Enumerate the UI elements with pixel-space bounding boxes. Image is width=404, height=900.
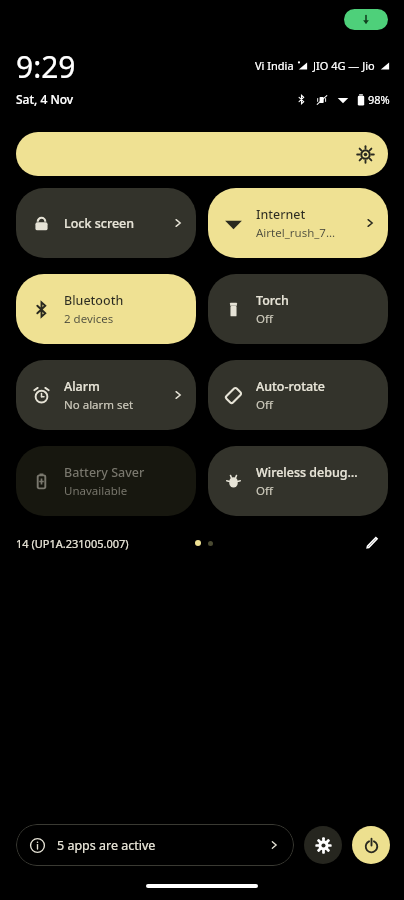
staticText: Off [256, 311, 273, 327]
staticText: Off [256, 397, 273, 413]
staticText: JIO 4G — Jio [313, 58, 375, 73]
button[interactable]: Alarm [16, 360, 196, 430]
button[interactable]: Edit tiles [356, 527, 388, 559]
button[interactable]: Auto-rotate [208, 360, 388, 430]
button[interactable]: Download in progress [344, 9, 388, 30]
staticText: Wireless debug… [256, 464, 358, 481]
staticText: 14 (UP1A.231005.007) [16, 536, 129, 551]
button[interactable]: Internet [208, 188, 388, 258]
staticText: 9:29 [16, 46, 76, 87]
staticText: Off [256, 483, 273, 499]
staticText: Vi India [255, 58, 294, 73]
staticText: Sat, 4 Nov [16, 91, 74, 107]
button[interactable]: Power [352, 826, 390, 864]
staticText: Auto-rotate [256, 378, 326, 395]
staticText: Alarm [64, 378, 100, 395]
button[interactable]: Settings [304, 826, 342, 864]
button[interactable]: Wireless debug… [208, 446, 388, 516]
staticText: Internet [256, 206, 306, 223]
staticText: Bluetooth [64, 292, 124, 309]
staticText: 98% [368, 92, 390, 107]
button[interactable]: Torch [208, 274, 388, 344]
button[interactable]: 5 apps are active [16, 824, 294, 866]
staticText: Lock screen [64, 215, 135, 232]
staticText: Torch [256, 292, 289, 309]
staticText: Airtel_rush_7… [256, 225, 336, 241]
staticText: Battery Saver [64, 464, 145, 481]
button[interactable]: Brightness [16, 132, 388, 176]
staticText: Unavailable [64, 483, 128, 499]
staticText: 5 apps are active [57, 837, 268, 854]
button[interactable]: Bluetooth [16, 274, 196, 344]
staticText: 2 devices [64, 311, 114, 327]
staticText: No alarm set [64, 397, 134, 413]
button[interactable]: Battery Saver [16, 446, 196, 516]
button[interactable]: Lock screen [16, 188, 196, 258]
